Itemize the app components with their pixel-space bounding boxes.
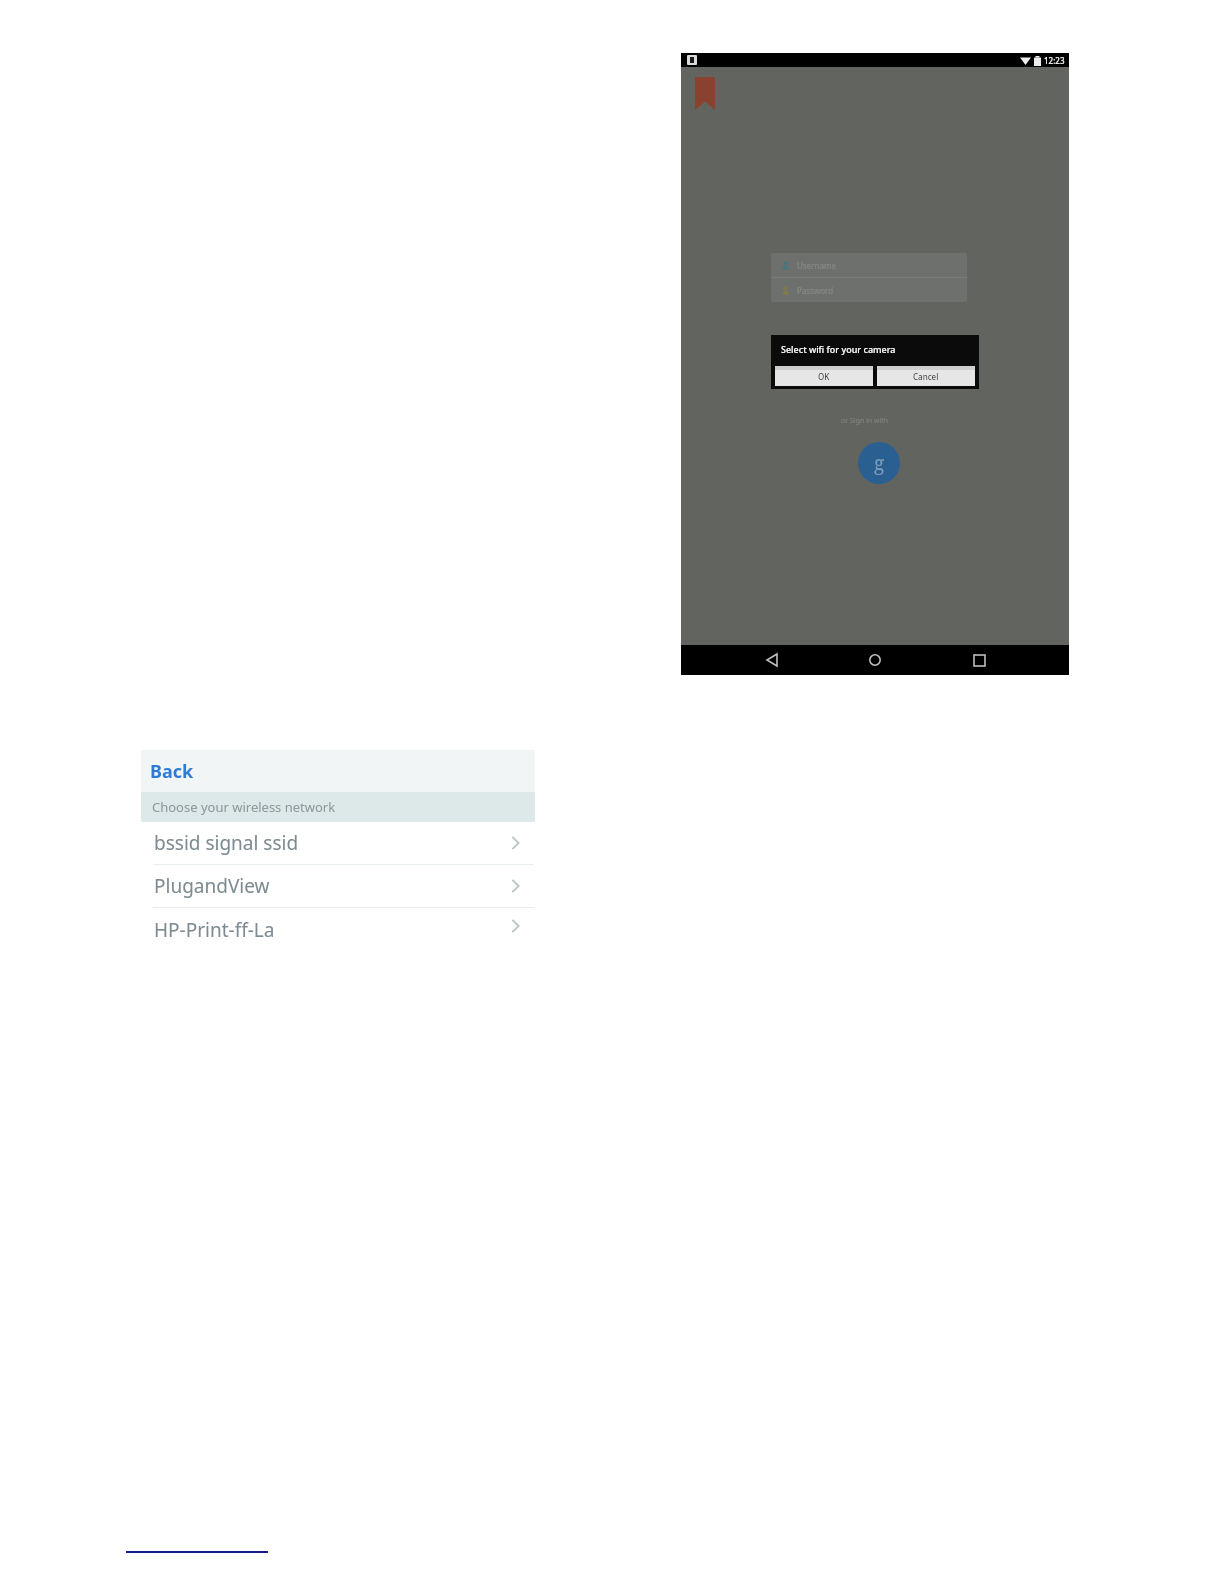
button[interactable]: Username xyxy=(771,253,967,277)
staticText: Choose your wireless network xyxy=(152,798,336,816)
button[interactable]: Back xyxy=(759,647,785,673)
staticText: PlugandView xyxy=(154,873,270,899)
staticText: HP-Print-ff-La xyxy=(154,917,275,943)
button[interactable]: Sign in with Google xyxy=(858,442,900,484)
button[interactable]: PlugandView xyxy=(141,865,536,907)
button[interactable]: Recent apps xyxy=(966,647,992,673)
button[interactable]: Password xyxy=(771,278,967,302)
button[interactable]: bssid signal ssid xyxy=(141,822,536,864)
staticText: Back xyxy=(150,759,194,784)
button[interactable]: Back xyxy=(141,750,535,792)
staticText: Cancel xyxy=(913,371,939,382)
staticText: OK xyxy=(818,371,830,382)
button[interactable]: HP-Print-ff-La xyxy=(141,908,536,946)
button[interactable]: Home xyxy=(862,647,888,673)
staticText: Username xyxy=(797,260,836,271)
staticText: bssid signal ssid xyxy=(154,830,299,856)
staticText: Password xyxy=(797,285,834,296)
staticText: Select wifi for your camera xyxy=(781,343,896,355)
button[interactable]: Cancel xyxy=(877,366,975,386)
button[interactable]: OK xyxy=(775,366,873,386)
staticText: or Sign in with xyxy=(841,416,889,426)
staticText: 12:23 xyxy=(1044,55,1065,66)
staticText: g xyxy=(874,450,885,476)
